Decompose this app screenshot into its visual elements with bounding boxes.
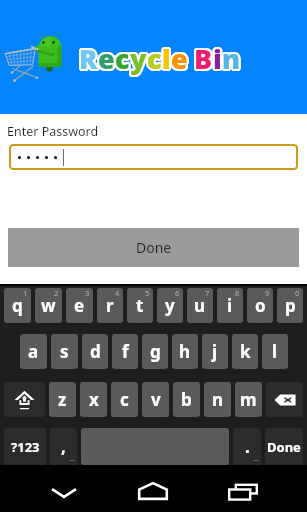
button[interactable]: r xyxy=(97,288,123,323)
button[interactable]: , xyxy=(50,428,77,465)
staticText: y xyxy=(130,40,147,77)
staticText: c xyxy=(113,40,128,77)
staticText: R xyxy=(80,41,99,78)
button[interactable]: j xyxy=(202,334,228,369)
button[interactable]: t xyxy=(127,288,153,323)
staticText: e xyxy=(172,41,189,78)
staticText: l xyxy=(161,41,170,78)
staticText: e xyxy=(98,39,115,76)
staticText: e xyxy=(172,38,189,75)
staticText: y xyxy=(129,38,146,75)
staticText: l xyxy=(162,39,171,76)
button[interactable] xyxy=(9,144,298,170)
staticText: R xyxy=(80,39,99,76)
staticText: j xyxy=(212,340,218,363)
staticText: n xyxy=(222,42,241,79)
staticText: n xyxy=(221,39,240,76)
button[interactable]: Recent apps xyxy=(211,465,275,512)
button[interactable]: a xyxy=(20,334,47,369)
button[interactable]: o xyxy=(247,288,273,323)
button[interactable]: i xyxy=(217,288,243,323)
staticText: y xyxy=(128,39,145,76)
staticText: y xyxy=(129,39,146,76)
staticText: e xyxy=(172,39,189,76)
staticText: R xyxy=(78,42,97,79)
staticText: 6 xyxy=(175,288,180,298)
staticText: g xyxy=(150,340,161,363)
button[interactable]: Backspace xyxy=(266,382,303,417)
button[interactable]: Done xyxy=(265,428,303,465)
button[interactable]: Shift xyxy=(4,382,45,417)
button[interactable]: d xyxy=(82,334,108,369)
button[interactable]: f xyxy=(112,334,138,369)
staticText: e xyxy=(99,41,116,78)
staticText: e xyxy=(171,42,188,79)
staticText: c xyxy=(148,39,163,76)
staticText: y xyxy=(130,42,147,79)
staticText: c xyxy=(148,42,163,79)
button[interactable]: k xyxy=(232,334,258,369)
button[interactable]: b xyxy=(173,382,200,417)
button[interactable]: s xyxy=(51,334,78,369)
staticText: c xyxy=(149,39,164,76)
staticText: c xyxy=(148,38,163,75)
button[interactable]: z xyxy=(49,382,76,417)
staticText: e xyxy=(170,39,187,76)
staticText: c xyxy=(113,39,128,76)
staticText: 2 xyxy=(54,288,59,298)
staticText: n xyxy=(224,41,243,78)
button[interactable]: Done xyxy=(8,228,299,267)
staticText: l xyxy=(164,41,173,78)
button[interactable]: u xyxy=(187,288,213,323)
staticText: e xyxy=(170,40,187,77)
staticText: c xyxy=(114,41,129,78)
button[interactable]: e xyxy=(66,288,93,323)
staticText: n xyxy=(223,39,242,76)
staticText: n xyxy=(223,38,242,75)
button[interactable]: m xyxy=(235,382,262,417)
button[interactable]: Home xyxy=(121,465,185,512)
staticText: c xyxy=(116,42,131,79)
staticText: c xyxy=(147,41,162,78)
staticText: n xyxy=(222,38,241,75)
button[interactable]: y xyxy=(157,288,183,323)
staticText: m xyxy=(240,388,257,411)
staticText: i xyxy=(214,41,223,78)
staticText: l xyxy=(164,40,173,77)
staticText: c xyxy=(117,40,132,77)
button[interactable]: p xyxy=(277,288,303,323)
button[interactable]: w xyxy=(35,288,62,323)
staticText: B xyxy=(195,38,214,75)
staticText: l xyxy=(160,40,169,77)
staticText: i xyxy=(213,40,222,77)
button[interactable]: n xyxy=(204,382,231,417)
staticText: y xyxy=(131,39,148,76)
button[interactable]: q xyxy=(4,288,31,323)
staticText: c xyxy=(116,41,131,78)
button[interactable]: x xyxy=(80,382,107,417)
staticText: y xyxy=(129,41,146,78)
staticText: e xyxy=(170,41,187,78)
staticText: q xyxy=(12,294,23,317)
staticText: y xyxy=(128,40,145,77)
staticText: R xyxy=(81,40,100,77)
staticText: R xyxy=(78,41,97,78)
staticText: e xyxy=(100,39,117,76)
button[interactable]: Hide keyboard xyxy=(32,465,96,512)
staticText: e xyxy=(171,41,188,78)
button[interactable]: v xyxy=(142,382,169,417)
staticText: c xyxy=(117,41,132,78)
staticText: c xyxy=(115,40,130,77)
button[interactable]: h xyxy=(172,334,198,369)
staticText: n xyxy=(223,42,242,79)
button[interactable]: . xyxy=(233,428,261,465)
button[interactable]: ?123 xyxy=(4,428,46,465)
button[interactable]: l xyxy=(262,334,288,369)
button[interactable]: g xyxy=(142,334,168,369)
staticText: c xyxy=(147,42,162,79)
staticText: c xyxy=(148,40,163,77)
staticText: e xyxy=(173,41,190,78)
button[interactable]: c xyxy=(111,382,138,417)
staticText: e xyxy=(170,38,187,75)
